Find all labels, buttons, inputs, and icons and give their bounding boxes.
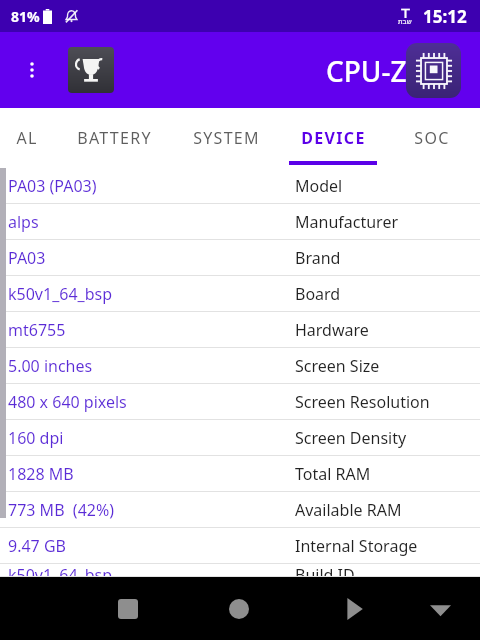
button[interactable]: Back: [333, 588, 375, 630]
button[interactable]: PA03: [0, 240, 480, 276]
staticText: 81%: [11, 7, 40, 26]
button[interactable]: DEVICE: [282, 108, 384, 168]
staticText: 5.00 inches: [8, 355, 93, 377]
staticText: SOC: [414, 127, 450, 149]
button[interactable]: PA03 (PA03): [0, 168, 480, 204]
button[interactable]: Hide keyboard: [419, 588, 461, 630]
button[interactable]: BATTERY: [58, 108, 170, 168]
button[interactable]: 1828 MB: [0, 456, 480, 492]
staticText: PA03 (PA03): [8, 175, 97, 197]
button[interactable]: mt6755: [0, 312, 480, 348]
staticText: Internal Storage: [295, 535, 418, 557]
staticText: שבת: [398, 18, 412, 26]
staticText: Screen Density: [295, 427, 407, 449]
button[interactable]: Recents: [107, 588, 149, 630]
staticText: DEVICE: [301, 127, 366, 149]
staticText: BATTERY: [77, 127, 152, 149]
staticText: Model: [295, 175, 343, 197]
staticText: 9.47 GB: [8, 535, 66, 557]
staticText: Screen Size: [295, 355, 380, 377]
button[interactable]: 160 dpi: [0, 420, 480, 456]
staticText: Build ID: [295, 564, 355, 577]
button[interactable]: SOC: [384, 108, 480, 168]
button[interactable]: 9.47 GB: [0, 528, 480, 564]
staticText: SYSTEM: [193, 127, 260, 149]
staticText: Manufacturer: [295, 211, 399, 233]
button[interactable]: k50v1_64_bsp: [0, 276, 480, 312]
staticText: mt6755: [8, 319, 66, 341]
button[interactable]: Benchmark: [68, 47, 114, 93]
staticText: CPU-Z: [326, 52, 407, 90]
staticText: Brand: [295, 247, 341, 269]
staticText: AL: [16, 127, 38, 149]
button[interactable]: CPU-Z: [406, 43, 461, 98]
button[interactable]: AL: [0, 108, 58, 168]
button[interactable]: SYSTEM: [170, 108, 282, 168]
staticText: 15:12: [423, 5, 467, 28]
button[interactable]: 773 MB (42%): [0, 492, 480, 528]
staticText: k50v1_64_bsp: [8, 564, 112, 577]
button[interactable]: 480 x 640 pixels: [0, 384, 480, 420]
button[interactable]: Home: [218, 588, 260, 630]
staticText: Available RAM: [295, 499, 402, 521]
staticText: PA03: [8, 247, 46, 269]
staticText: Total RAM: [295, 463, 371, 485]
button[interactable]: k50v1_64_bsp: [0, 564, 480, 577]
staticText: 480 x 640 pixels: [8, 391, 127, 413]
staticText: Board: [295, 283, 341, 305]
staticText: k50v1_64_bsp: [8, 283, 112, 305]
button[interactable]: 5.00 inches: [0, 348, 480, 384]
staticText: 1828 MB: [8, 463, 74, 485]
button[interactable]: alps: [0, 204, 480, 240]
staticText: Screen Resolution: [295, 391, 430, 413]
staticText: Hardware: [295, 319, 369, 341]
staticText: 773 MB (42%): [8, 499, 115, 521]
button[interactable]: More options: [16, 54, 48, 86]
staticText: alps: [8, 211, 39, 233]
staticText: 160 dpi: [8, 427, 64, 449]
